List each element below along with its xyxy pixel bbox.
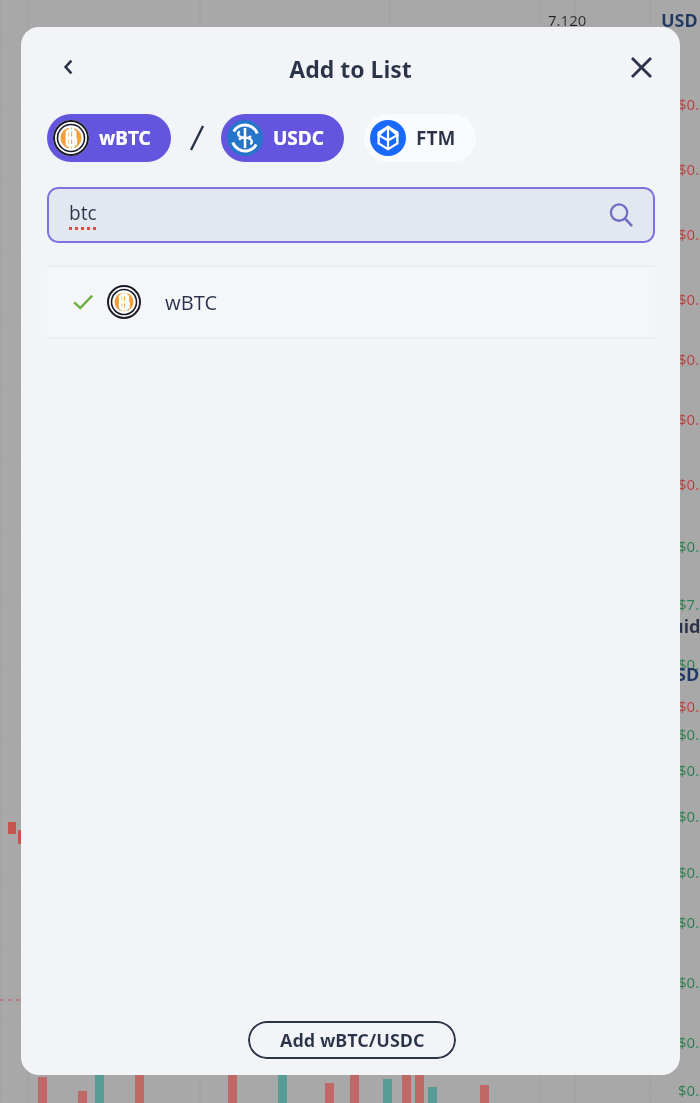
- staticText: $0.: [678, 862, 700, 882]
- staticText: FTM: [416, 125, 456, 151]
- staticText: $0.: [678, 724, 700, 744]
- staticText: $7.2: [678, 594, 700, 614]
- staticText: wBTC: [99, 125, 151, 151]
- staticText: $0.: [678, 912, 700, 932]
- staticText: btc: [69, 200, 97, 226]
- button[interactable]: FTM: [364, 114, 476, 162]
- staticText: $0.: [678, 536, 700, 556]
- staticText: 7.120: [548, 10, 587, 30]
- staticText: $0.: [678, 696, 700, 716]
- staticText: $0.: [678, 289, 700, 309]
- staticText: $0.: [678, 654, 700, 674]
- staticText: USDC: [273, 125, 324, 151]
- button[interactable]: USDC: [221, 114, 344, 162]
- staticText: $0.: [678, 349, 700, 369]
- staticText: SD: [676, 662, 700, 687]
- staticText: $0.: [678, 1080, 700, 1100]
- staticText: Add wBTC/USDC: [280, 1028, 425, 1053]
- staticText: $0.: [678, 159, 700, 179]
- staticText: uid: [672, 614, 700, 639]
- staticText: $0.: [678, 224, 700, 244]
- button[interactable]: Search: [601, 195, 641, 235]
- button[interactable]: Close: [619, 45, 663, 89]
- staticText: $0.: [678, 1032, 700, 1052]
- staticText: $0.: [678, 409, 700, 429]
- staticText: $0.: [678, 760, 700, 780]
- staticText: wBTC: [165, 289, 218, 316]
- button[interactable]: btc: [47, 187, 655, 243]
- staticText: $0.: [678, 94, 700, 114]
- staticText: $0.: [678, 972, 700, 992]
- button[interactable]: Add wBTC/USDC: [248, 1021, 456, 1059]
- staticText: $0.: [678, 474, 700, 494]
- staticText: Add to List: [289, 53, 412, 84]
- staticText: $0.: [678, 806, 700, 826]
- button[interactable]: wBTC: [47, 114, 171, 162]
- button[interactable]: wBTC: [47, 266, 655, 338]
- staticText: USD: [661, 8, 698, 33]
- button[interactable]: Back: [47, 45, 91, 89]
